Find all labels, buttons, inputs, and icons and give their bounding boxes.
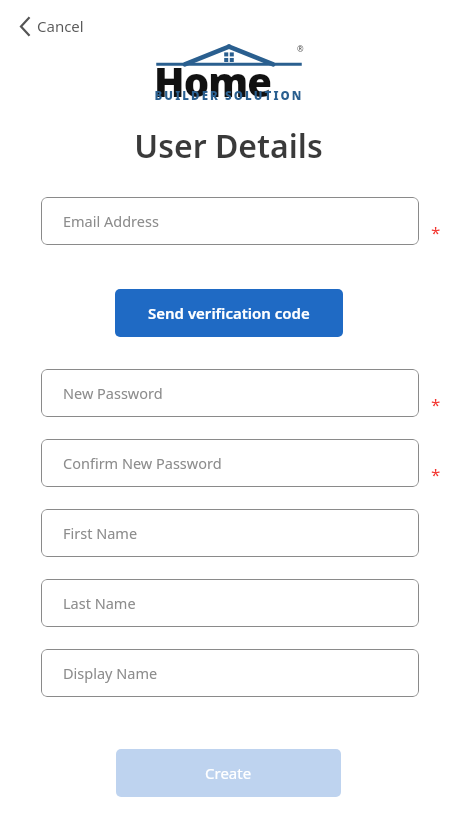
button[interactable]: Send verification code (115, 289, 343, 337)
staticText: Create (205, 763, 252, 783)
staticText: Display Name (63, 663, 158, 683)
staticText: BUILDER SOLUTION (154, 88, 304, 104)
staticText: * (431, 221, 441, 244)
staticText: Send verification code (148, 303, 310, 323)
staticText: First Name (63, 523, 138, 543)
staticText: New Password (63, 383, 163, 403)
staticText: Confirm New Password (63, 453, 222, 473)
staticText: Cancel (37, 16, 84, 36)
button[interactable]: Email Address (41, 197, 419, 245)
button[interactable]: Create account (116, 749, 341, 797)
staticText: User Details (134, 124, 323, 168)
staticText: ® (297, 43, 304, 54)
staticText: Last Name (63, 593, 136, 613)
staticText: Home (154, 54, 271, 104)
button[interactable]: Cancel (14, 12, 90, 40)
staticText: * (431, 463, 441, 486)
button[interactable]: Display Name (41, 649, 419, 697)
button[interactable]: Confirm New Password (41, 439, 419, 487)
button[interactable]: Last Name (41, 579, 419, 627)
button[interactable]: First Name (41, 509, 419, 557)
staticText: * (431, 393, 441, 416)
button[interactable]: New Password (41, 369, 419, 417)
staticText: Email Address (63, 211, 159, 231)
